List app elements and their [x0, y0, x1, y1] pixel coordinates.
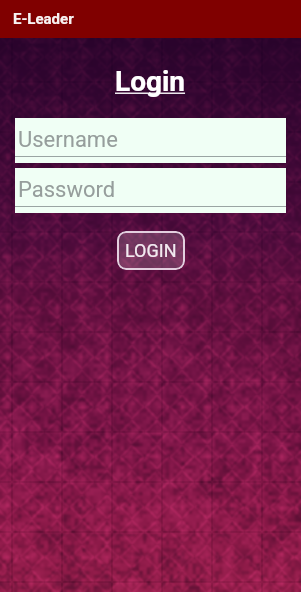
button[interactable]: Password: [15, 168, 286, 213]
staticText: Login: [115, 65, 186, 98]
staticText: E-Leader: [13, 10, 74, 28]
button[interactable]: Username: [15, 118, 286, 163]
staticText: Username: [18, 127, 118, 153]
staticText: Password: [18, 177, 116, 203]
button[interactable]: LOGIN: [117, 231, 185, 270]
staticText: LOGIN: [125, 240, 177, 261]
